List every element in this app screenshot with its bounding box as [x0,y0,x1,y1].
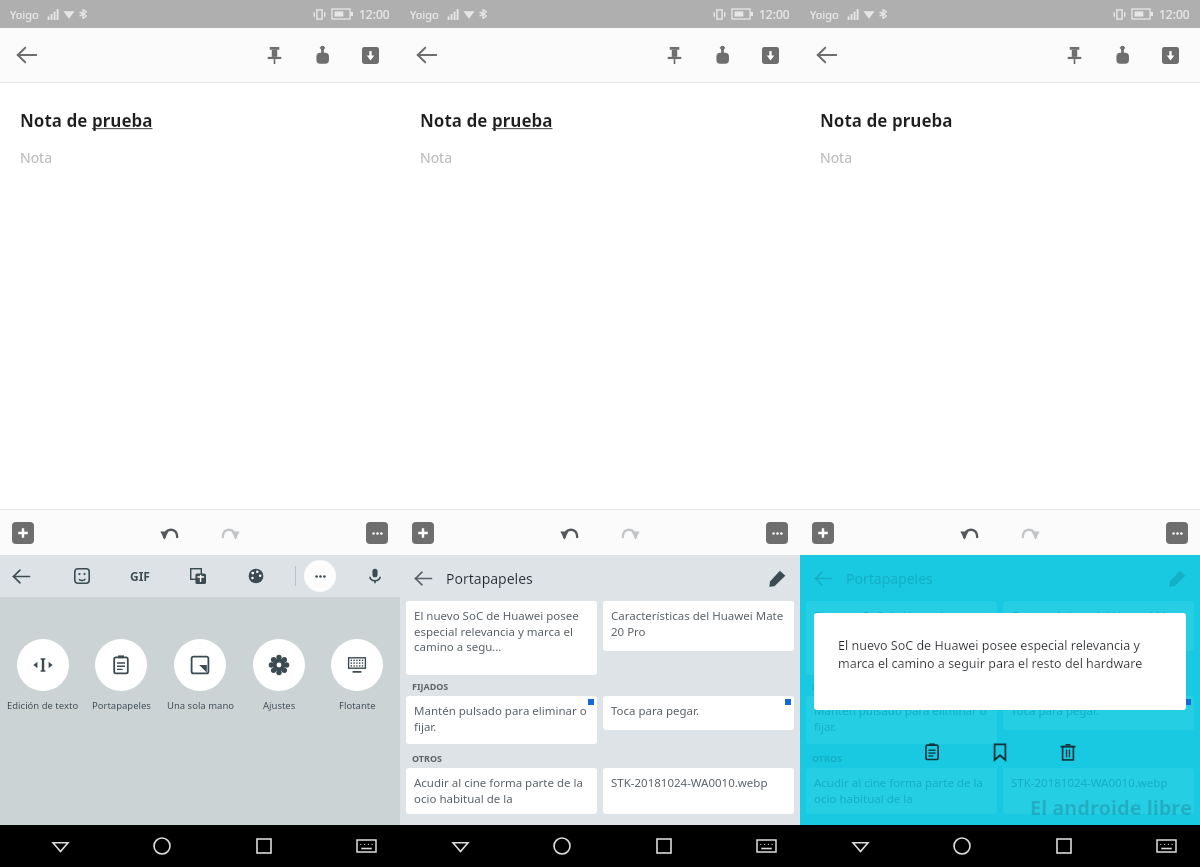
button[interactable]: Hide keyboard [1146,826,1186,866]
button[interactable]: Save note [1146,31,1194,79]
button[interactable]: Características del Huawei Mate 20 Pro [603,601,794,651]
button[interactable]: Handwriting [698,31,746,79]
button[interactable]: Hide keyboard [746,826,786,866]
staticText: FIJADOS [412,680,449,692]
staticText: Nota de [20,109,92,132]
staticText: El androide libre [1030,794,1192,821]
button[interactable]: STK-20181024-WA0010.webp [1003,768,1194,814]
button[interactable]: Handwriting [1098,31,1146,79]
button[interactable]: Edit clipboard [1154,555,1200,601]
button[interactable]: More options [1166,522,1188,544]
staticText: STK-20181024-WA0010.webp [1011,775,1168,791]
button[interactable]: Themes [237,557,275,595]
button[interactable]: Características del Huawei Mate 20 Pro [1003,601,1194,651]
button[interactable]: Stickers [63,557,101,595]
staticText: Características del Huawei Mate 20 Pro [611,608,786,639]
button[interactable]: Recent apps [644,826,684,866]
button[interactable]: Toca para pegar. [603,696,794,730]
button[interactable]: Save note [346,31,394,79]
button[interactable]: Add content [12,522,34,544]
button[interactable]: El nuevo SoC de Huawei posee especial re… [806,601,997,675]
staticText: 12:00 [1159,6,1190,22]
button[interactable]: Home [142,826,182,866]
button[interactable]: Translate [179,557,217,595]
button[interactable]: Delete [1051,735,1085,769]
button[interactable]: Recent apps [244,826,284,866]
staticText: Yoigo [410,7,439,22]
staticText: Yoigo [10,7,39,22]
button[interactable]: Redo [208,511,252,555]
staticText: Ajustes [263,699,296,712]
staticText: Nota de [420,109,492,132]
button[interactable]: Undo [548,511,592,555]
button[interactable]: Pin note [650,31,698,79]
staticText: Acudir al cine forma parte de la ocio ha… [414,775,589,806]
button[interactable]: Edición de texto [5,639,81,712]
staticText: prueba [492,109,553,132]
button[interactable]: Pin note [250,31,298,79]
button[interactable]: Ajustes [241,639,317,712]
staticText: Nota [420,148,453,167]
button[interactable]: STK-20181024-WA0010.webp [603,768,794,814]
button[interactable]: Back [800,555,846,601]
staticText: Flotante [339,699,376,712]
button[interactable]: Back [40,826,80,866]
button[interactable]: Mantén pulsado para eliminar o fijar. [406,696,597,744]
button[interactable]: Back [400,28,454,82]
button[interactable]: Back [400,555,446,601]
button[interactable]: More options [766,522,788,544]
staticText: Nota de [820,109,892,132]
button[interactable]: Recent apps [1044,826,1084,866]
button[interactable]: More options [366,522,388,544]
staticText: FIJADOS [812,680,849,692]
staticText: El nuevo SoC de Huawei posee especial re… [814,608,989,654]
button[interactable]: El nuevo SoC de Huawei posee especial re… [814,613,1186,710]
staticText: GIF [130,568,150,584]
staticText: OTROS [412,752,443,764]
button[interactable]: Back [0,555,42,597]
button[interactable]: Una sola mano [162,639,238,712]
staticText: prueba [892,109,953,132]
button[interactable]: Back [440,826,480,866]
staticText: prueba [92,109,153,132]
button[interactable]: El nuevo SoC de Huawei posee especial re… [406,601,597,675]
staticText: El nuevo SoC de Huawei posee especial re… [414,608,589,654]
button[interactable]: More options [304,560,336,592]
staticText: Mantén pulsado para eliminar o fijar. [414,703,589,734]
button[interactable]: GIF [121,557,159,595]
button[interactable]: Add content [412,522,434,544]
button[interactable]: Handwriting [298,31,346,79]
button[interactable]: Pin note [1050,31,1098,79]
staticText: Portapapeles [92,699,151,712]
button[interactable]: Undo [948,511,992,555]
button[interactable]: Back [800,28,854,82]
button[interactable]: Hide keyboard [346,826,386,866]
staticText: El nuevo SoC de Huawei posee especial re… [838,637,1168,672]
button[interactable]: Back [0,28,54,82]
staticText: OTROS [812,752,843,764]
button[interactable]: Home [942,826,982,866]
staticText: Toca para pegar. [1011,703,1100,719]
button[interactable]: Back [840,826,880,866]
staticText: Yoigo [810,7,839,22]
button[interactable]: Home [542,826,582,866]
button[interactable]: Redo [1008,511,1052,555]
staticText: Una sola mano [167,699,234,712]
button[interactable]: Mantén pulsado para eliminar o fijar. [806,696,997,744]
button[interactable]: Redo [608,511,652,555]
staticText: Características del Huawei Mate 20 Pro [1011,608,1186,639]
button[interactable]: Acudir al cine forma parte de la ocio ha… [806,768,997,814]
staticText: Portapapeles [446,569,533,588]
staticText: 12:00 [359,6,390,22]
button[interactable]: Toca para pegar. [1003,696,1194,730]
button[interactable]: Pin [983,735,1017,769]
button[interactable]: Edit clipboard [754,555,800,601]
button[interactable]: Save note [746,31,794,79]
button[interactable]: Acudir al cine forma parte de la ocio ha… [406,768,597,814]
button[interactable]: Flotante [319,639,395,712]
button[interactable]: Portapapeles [83,639,159,712]
button[interactable]: Voice input [356,557,394,595]
button[interactable]: Add content [812,522,834,544]
button[interactable]: Undo [148,511,192,555]
button[interactable]: Copy [915,735,949,769]
